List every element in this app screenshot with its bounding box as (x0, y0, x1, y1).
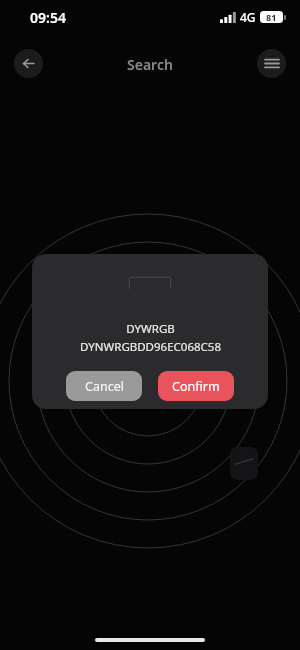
button[interactable]: Device marker (230, 447, 258, 480)
staticText: Confirm (172, 378, 220, 395)
button[interactable]: Menu (257, 49, 286, 78)
staticText: 4G (240, 9, 256, 25)
staticText: 09:54 (30, 8, 66, 27)
staticText: Search (127, 55, 173, 74)
button[interactable]: Cancel (66, 371, 142, 401)
button[interactable]: Confirm (158, 371, 234, 401)
staticText: DYWRGB (126, 321, 175, 337)
staticText: Cancel (85, 378, 124, 395)
staticText: 81 (266, 11, 277, 23)
staticText: DYNWRGBDD96EC068C58 (80, 339, 221, 355)
button[interactable]: Back (14, 49, 43, 78)
